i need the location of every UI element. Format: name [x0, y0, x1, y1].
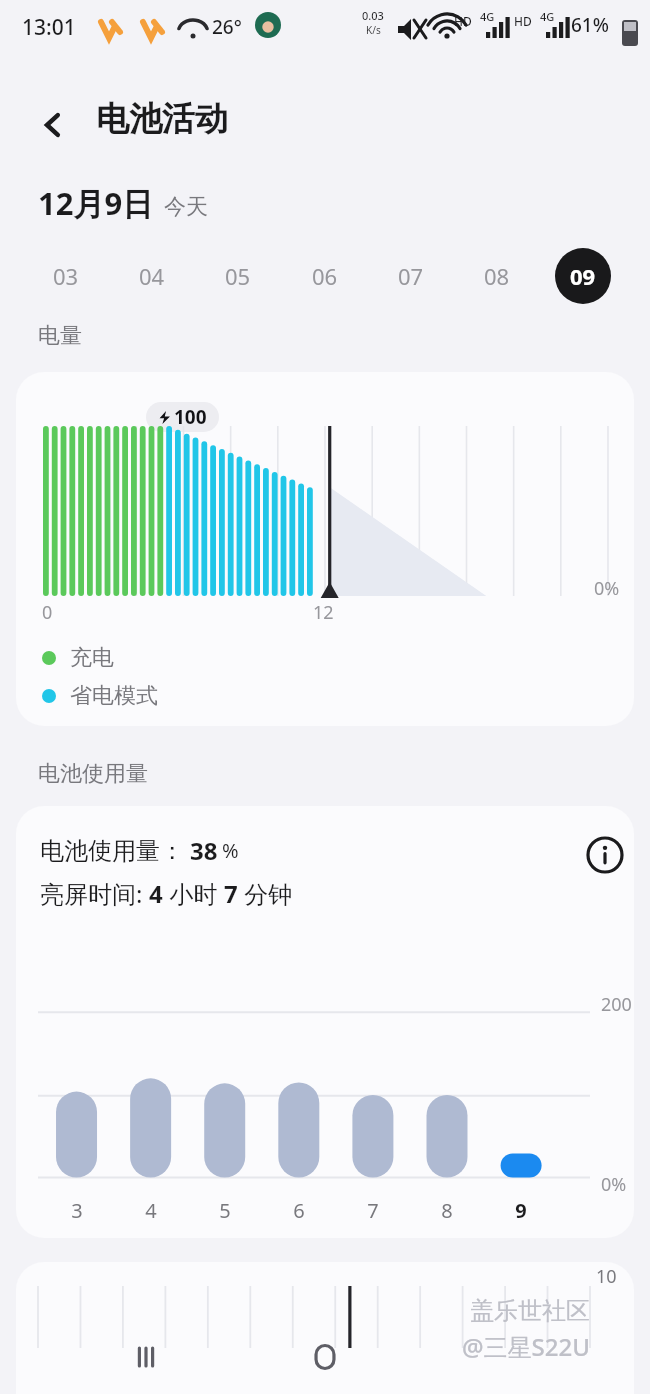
staticText: % — [222, 837, 239, 864]
staticText: 6 — [293, 1197, 305, 1224]
button[interactable]: 08 — [469, 248, 525, 304]
staticText: 电池活动 — [96, 98, 228, 140]
button[interactable]: 06 — [297, 248, 353, 304]
staticText: @三星S22U — [462, 1330, 590, 1363]
staticText: HD — [454, 13, 472, 29]
button[interactable]: Back — [22, 94, 84, 156]
staticText: 3 — [71, 1197, 83, 1224]
staticText: 7 — [224, 877, 238, 910]
staticText: 电量 — [38, 322, 82, 350]
staticText: 08 — [484, 261, 510, 291]
staticText: 10 — [596, 1264, 617, 1289]
staticText: 38 — [190, 834, 218, 867]
staticText: 09 — [570, 261, 596, 291]
button[interactable]: Info — [578, 828, 632, 882]
staticText: 4G — [540, 9, 555, 24]
staticText: 电池使用量 — [38, 760, 148, 788]
staticText: 61% — [571, 12, 609, 38]
button[interactable]: 09 — [555, 248, 611, 304]
staticText: 26° — [212, 14, 242, 40]
staticText: 05 — [225, 261, 251, 291]
staticText: 小时 — [163, 877, 224, 910]
staticText: 12月9日 — [38, 182, 154, 224]
staticText: 0 — [42, 600, 53, 625]
staticText: 亮屏时间: — [40, 877, 149, 910]
staticText: 4 — [145, 1197, 157, 1224]
button[interactable]: 100 — [16, 372, 634, 726]
button[interactable]: 电池使用量： — [16, 806, 634, 1238]
staticText: 7 — [367, 1197, 379, 1224]
staticText: 0.03 — [362, 8, 384, 23]
button[interactable]: 04 — [124, 248, 180, 304]
staticText: 12 — [313, 600, 334, 625]
staticText: 4G — [480, 9, 495, 24]
staticText: 盖乐世社区 — [470, 1296, 590, 1326]
staticText: 100 — [174, 404, 207, 430]
button[interactable]: Home — [287, 1328, 363, 1386]
staticText: 充电 — [70, 644, 114, 672]
staticText: 9 — [515, 1197, 527, 1224]
button[interactable]: 07 — [383, 248, 439, 304]
staticText: HD — [514, 13, 532, 29]
staticText: 200 — [601, 992, 632, 1017]
staticText: 07 — [398, 261, 424, 291]
staticText: K/s — [366, 23, 381, 37]
button[interactable]: 03 — [38, 248, 94, 304]
staticText: 0% — [601, 1172, 627, 1197]
button[interactable]: 05 — [210, 248, 266, 304]
staticText: 4 — [149, 877, 163, 910]
staticText: 电池使用量： — [40, 836, 184, 866]
button[interactable]: Recents — [108, 1328, 184, 1386]
staticText: 今天 — [164, 193, 208, 221]
staticText: 13:01 — [22, 13, 76, 42]
staticText: 省电模式 — [70, 682, 158, 710]
staticText: 06 — [312, 261, 338, 291]
staticText: 04 — [139, 261, 165, 291]
staticText: 0% — [594, 576, 620, 601]
staticText: 8 — [441, 1197, 453, 1224]
staticText: 5 — [219, 1197, 231, 1224]
staticText: 分钟 — [238, 877, 293, 910]
staticText: 03 — [53, 261, 79, 291]
